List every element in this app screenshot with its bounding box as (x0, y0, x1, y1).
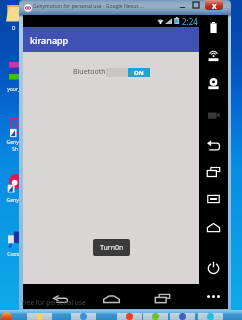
button[interactable]: Taskbar item 4 (143, 313, 168, 320)
button[interactable]: Minimize (176, 0, 189, 10)
button[interactable]: Video record (207, 107, 220, 120)
button[interactable]: Taskbar item 6 (198, 313, 223, 320)
staticText: D (5, 25, 22, 32)
staticText: free for personal use (22, 298, 86, 307)
button[interactable]: Home (207, 223, 220, 232)
staticText: ON (134, 69, 144, 77)
staticText: Comm (0, 251, 30, 258)
button[interactable]: Close (205, 0, 223, 10)
button[interactable]: More options (207, 292, 220, 300)
button[interactable]: Start (1, 312, 12, 320)
staticText: Genym Sh (0, 139, 30, 152)
button[interactable]: Power (207, 261, 220, 274)
button[interactable]: Bluetooth switch (106, 68, 150, 77)
button[interactable]: Taskbar item 5 (170, 313, 195, 320)
button[interactable]: Menu (207, 194, 220, 204)
button[interactable]: Taskbar item 3 (117, 313, 142, 320)
button[interactable]: Camera (207, 77, 220, 90)
button[interactable]: Taskbar item 2 (71, 313, 96, 320)
button[interactable]: GPS (207, 51, 220, 62)
staticText: Genymotion for personal use - Google Nex… (33, 3, 144, 10)
button[interactable]: Back (53, 295, 68, 303)
staticText: Bluetooth (73, 67, 106, 77)
button[interactable]: Maximize (189, 0, 202, 10)
button[interactable]: Home (103, 295, 120, 303)
staticText: Turn0n (100, 243, 124, 253)
staticText: Genym (0, 197, 30, 204)
staticText: 2:24 (182, 16, 198, 27)
staticText: kiranapp (30, 34, 69, 46)
staticText: your_v (1, 86, 29, 93)
button[interactable]: Taskbar item 1 (27, 313, 52, 320)
button[interactable]: Battery (207, 22, 220, 33)
button[interactable]: Back (207, 141, 220, 151)
button[interactable]: Recent apps (155, 294, 170, 303)
staticText: x (212, 0, 217, 10)
button[interactable]: Recent apps (207, 167, 220, 177)
button[interactable]: Turn0n (93, 239, 130, 256)
